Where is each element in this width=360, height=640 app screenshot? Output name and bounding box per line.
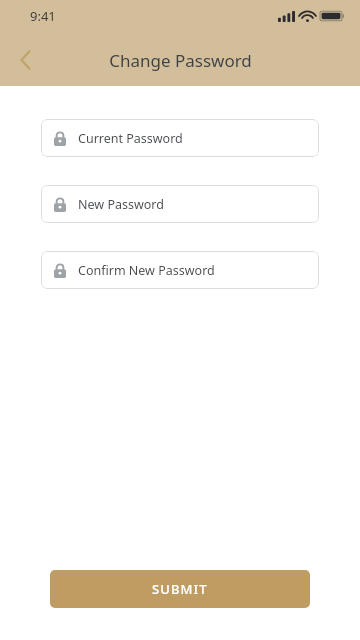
staticText: Confirm New Password (78, 262, 215, 279)
staticText: New Password (78, 196, 164, 213)
button[interactable]: Current Password (41, 119, 319, 157)
button[interactable]: New Password (41, 185, 319, 223)
staticText: Current Password (78, 130, 183, 147)
button[interactable]: SUBMIT (50, 570, 310, 608)
button[interactable]: Back (4, 38, 48, 82)
staticText: Change Password (109, 49, 252, 72)
button[interactable]: Confirm New Password (41, 251, 319, 289)
staticText: SUBMIT (152, 580, 208, 598)
staticText: 9:41 (30, 7, 56, 25)
